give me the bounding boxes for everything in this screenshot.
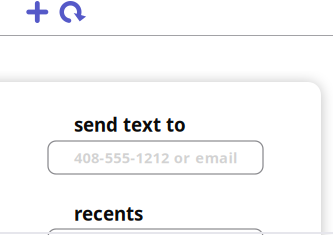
button[interactable]: New message xyxy=(26,1,48,23)
staticText: 408-555-1212 or email xyxy=(74,148,237,167)
button[interactable]: 408-555-1212 or email xyxy=(48,141,263,174)
button[interactable]: Refresh xyxy=(59,0,87,28)
staticText: send text to xyxy=(74,112,186,137)
button[interactable]: Recent contact xyxy=(48,229,263,235)
staticText: recents xyxy=(74,201,143,226)
